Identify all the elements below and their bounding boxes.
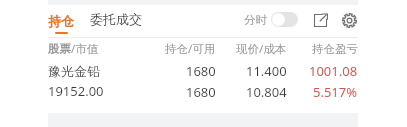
staticText: 19152.00 [48, 82, 104, 100]
staticText: 委托成交 [90, 11, 142, 27]
staticText: 持仓 [48, 13, 74, 29]
staticText: 5.517% [313, 83, 358, 101]
staticText: /市值 [71, 41, 99, 57]
staticText: 1001.08 [309, 62, 358, 80]
button[interactable]: 委托成交 [90, 5, 142, 38]
staticText: 1680 [186, 83, 216, 101]
staticText: 现价/成本 [236, 41, 287, 57]
staticText: 1680 [186, 62, 216, 80]
staticText: 10.804 [246, 83, 287, 101]
staticText: 豫光金铅 [48, 63, 100, 79]
button[interactable]: 豫光金铅 [0, 60, 407, 102]
button[interactable]: 分时 [244, 12, 298, 27]
staticText: 股票 [48, 42, 71, 56]
button[interactable]: Settings [340, 11, 358, 29]
staticText: 11.400 [246, 62, 287, 80]
button[interactable]: 持仓 [48, 5, 74, 38]
button[interactable]: Share [311, 11, 329, 29]
staticText: 分时 [244, 13, 267, 27]
staticText: 持仓盈亏 [312, 42, 358, 56]
staticText: 持仓/可用 [165, 41, 216, 57]
